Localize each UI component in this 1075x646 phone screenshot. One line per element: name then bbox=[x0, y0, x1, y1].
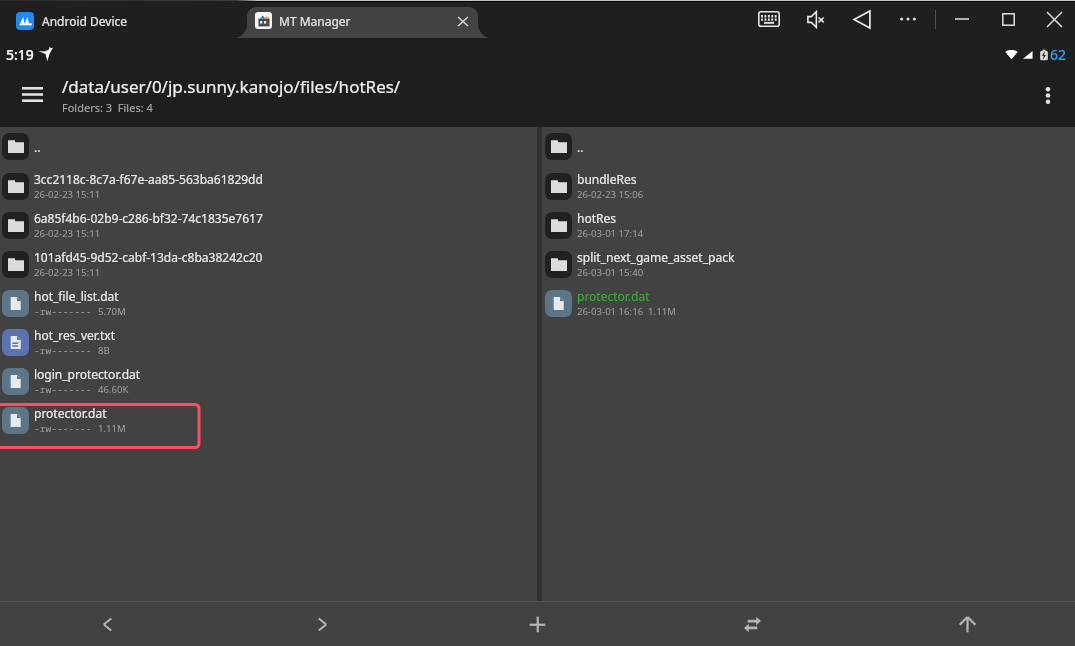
staticText: 26-03-01 16:16 1.11M bbox=[577, 305, 676, 318]
staticText: login_protector.dat bbox=[34, 366, 141, 382]
button[interactable]: MT Manager bbox=[234, 7, 491, 38]
staticText: /data/user/0/jp.sunny.kanojo/files/hotRe… bbox=[62, 75, 401, 98]
button[interactable]: 3cc2118c-8c7a-f67e-aa85-563ba61829dd bbox=[0, 166, 537, 205]
button[interactable]: hot_file_list.dat bbox=[0, 283, 537, 322]
button[interactable]: More bbox=[892, 3, 924, 35]
button[interactable]: 101afd45-9d52-cabf-13da-c8ba38242c20 bbox=[0, 244, 537, 283]
staticText: 8B bbox=[98, 344, 110, 357]
button[interactable]: Back bbox=[846, 3, 878, 35]
button[interactable]: login_protector.dat bbox=[0, 361, 537, 400]
staticText: 1.11M bbox=[98, 422, 126, 435]
staticText: 26-02-23 15:06 bbox=[577, 188, 644, 201]
staticText: hot_res_ver.txt bbox=[34, 327, 116, 343]
staticText: 26-02-23 15:11 bbox=[34, 188, 101, 201]
staticText: protector.dat bbox=[577, 288, 650, 304]
button[interactable]: .. bbox=[542, 127, 1075, 166]
button[interactable]: Close bbox=[1038, 3, 1070, 35]
button[interactable]: Mute bbox=[800, 3, 832, 35]
button[interactable]: Back bbox=[0, 602, 215, 646]
staticText: -rw------- bbox=[34, 344, 92, 357]
staticText: MT Manager bbox=[279, 13, 351, 29]
staticText: Android Device bbox=[42, 13, 128, 29]
staticText: 26-03-01 17:14 bbox=[577, 227, 644, 240]
staticText: 6a85f4b6-02b9-c286-bf32-74c1835e7617 bbox=[34, 210, 263, 226]
button[interactable]: protector.dat bbox=[0, 400, 537, 439]
button[interactable]: bundleRes bbox=[542, 166, 1075, 205]
staticText: 26-02-23 15:11 bbox=[34, 227, 101, 240]
staticText: protector.dat bbox=[34, 405, 107, 421]
button[interactable]: Forward bbox=[215, 602, 430, 646]
button[interactable]: Maximize bbox=[992, 3, 1024, 35]
staticText: .. bbox=[34, 139, 41, 155]
staticText: bundleRes bbox=[577, 171, 637, 187]
button[interactable]: hot_res_ver.txt bbox=[0, 322, 537, 361]
staticText: hot_file_list.dat bbox=[34, 288, 119, 304]
staticText: 62 bbox=[1050, 45, 1067, 64]
staticText: 26-02-23 15:11 bbox=[34, 266, 101, 279]
staticText: -rw------- bbox=[34, 422, 92, 435]
staticText: Folders: 3 Files: 4 bbox=[62, 100, 153, 115]
button[interactable]: More options bbox=[1030, 77, 1066, 113]
staticText: 101afd45-9d52-cabf-13da-c8ba38242c20 bbox=[34, 249, 263, 265]
button[interactable]: Add bbox=[430, 602, 645, 646]
staticText: split_next_game_asset_pack bbox=[577, 249, 735, 265]
staticText: .. bbox=[577, 139, 584, 155]
staticText: -rw------- bbox=[34, 383, 92, 396]
staticText: 46.60K bbox=[98, 383, 129, 396]
button[interactable]: Close tab bbox=[452, 10, 474, 32]
button[interactable]: Up bbox=[860, 602, 1075, 646]
button[interactable]: Swap bbox=[645, 602, 860, 646]
staticText: 3cc2118c-8c7a-f67e-aa85-563ba61829dd bbox=[34, 171, 263, 187]
staticText: 26-03-01 15:40 bbox=[577, 266, 644, 279]
button[interactable]: Keyboard bbox=[753, 3, 785, 35]
button[interactable]: Minimize bbox=[946, 3, 978, 35]
button[interactable]: Menu bbox=[14, 76, 50, 112]
button[interactable]: hotRes bbox=[542, 205, 1075, 244]
button[interactable]: 6a85f4b6-02b9-c286-bf32-74c1835e7617 bbox=[0, 205, 537, 244]
staticText: 5:19 bbox=[6, 45, 34, 64]
staticText: -rw------- bbox=[34, 305, 92, 318]
staticText: hotRes bbox=[577, 210, 616, 226]
button[interactable]: split_next_game_asset_pack bbox=[542, 244, 1075, 283]
button[interactable]: protector.dat bbox=[542, 283, 1075, 322]
button[interactable]: .. bbox=[0, 127, 537, 166]
staticText: 5.70M bbox=[98, 305, 126, 318]
